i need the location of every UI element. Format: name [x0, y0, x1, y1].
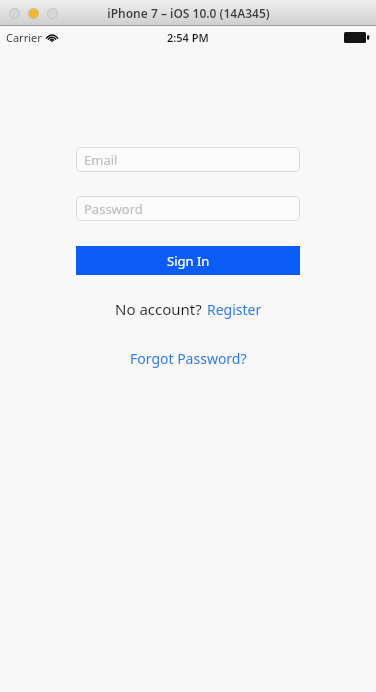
staticText: Password — [84, 200, 143, 218]
staticText: No account? — [115, 299, 202, 319]
staticText: Forgot Password? — [130, 349, 247, 368]
button[interactable]: Email — [76, 147, 300, 172]
button[interactable]: Zoom window — [47, 8, 58, 19]
staticText: Email — [84, 151, 118, 169]
button[interactable]: Sign In — [76, 246, 300, 275]
staticText: Carrier — [6, 30, 42, 45]
staticText: iPhone 7 – iOS 10.0 (14A345) — [107, 5, 270, 21]
button[interactable]: Register — [207, 300, 262, 319]
button[interactable]: Close window — [9, 8, 20, 19]
staticText: Sign In — [167, 252, 210, 270]
button[interactable]: Forgot Password? — [124, 346, 253, 371]
button[interactable]: Password — [76, 196, 300, 221]
staticText: Register — [207, 300, 262, 319]
staticText: 2:54 PM — [167, 30, 209, 45]
button[interactable]: Minimize window — [28, 8, 39, 19]
